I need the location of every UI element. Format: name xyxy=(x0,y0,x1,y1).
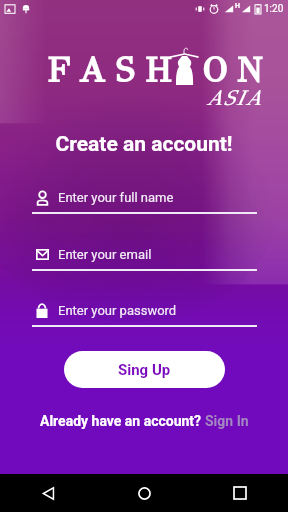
staticText: FASH xyxy=(47,49,183,92)
button[interactable]: Sing Up xyxy=(64,351,225,388)
button[interactable]: Home xyxy=(128,477,160,509)
button[interactable]: Back xyxy=(32,477,64,509)
staticText: Enter your email xyxy=(58,247,152,262)
staticText: H xyxy=(235,2,240,10)
button[interactable]: Sign In xyxy=(205,413,249,429)
button[interactable]: Recents xyxy=(224,477,256,509)
staticText: 1:20 xyxy=(264,3,284,15)
staticText: Sing Up xyxy=(118,361,171,379)
staticText: Enter your full name xyxy=(58,190,174,205)
staticText: Enter your password xyxy=(58,303,177,318)
staticText: Create an account! xyxy=(0,132,288,157)
staticText: Sign In xyxy=(205,413,249,429)
staticText: Already have an account? xyxy=(40,413,205,429)
staticText: ON xyxy=(202,49,271,92)
staticText: ASIA xyxy=(206,85,263,111)
